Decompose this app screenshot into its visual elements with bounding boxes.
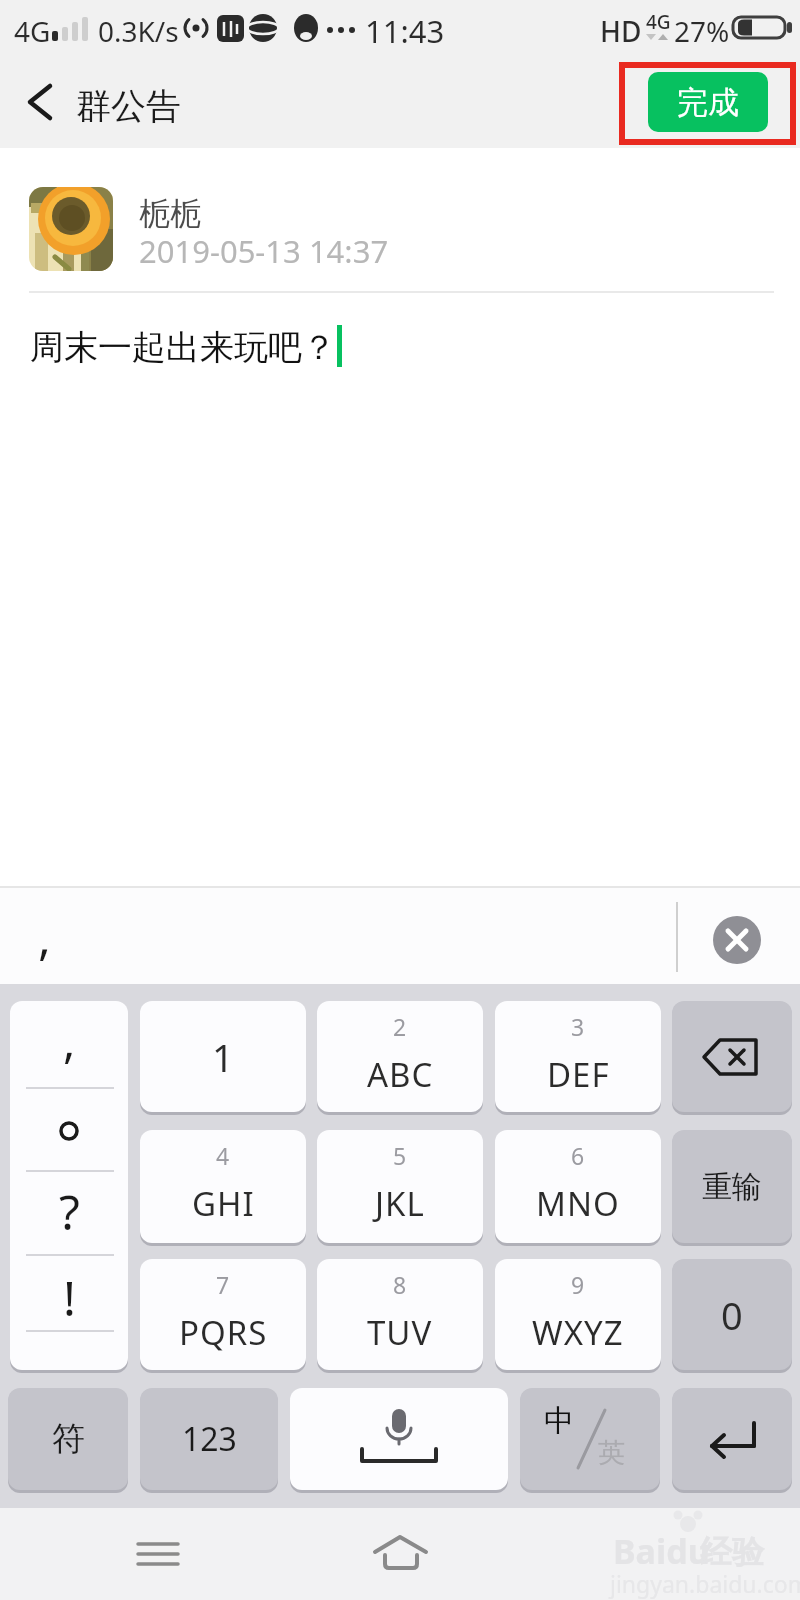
button[interactable]: 4 [140, 1130, 306, 1243]
button[interactable] [365, 1530, 435, 1580]
staticText: 5 [393, 1140, 407, 1171]
staticText: , [63, 1009, 76, 1072]
staticText: 4G [646, 9, 671, 35]
button[interactable]: 符 [8, 1388, 128, 1490]
staticText: jingyan.baidu.com [610, 1568, 800, 1599]
staticText: 栀栀 [139, 194, 201, 233]
button[interactable]: 5 [317, 1130, 483, 1243]
staticText: 4 [216, 1140, 230, 1171]
staticText: ? [59, 1179, 80, 1244]
staticText: 8 [393, 1269, 407, 1300]
staticText: 27% [674, 12, 730, 50]
button[interactable]: 中 [520, 1388, 660, 1490]
staticText: 123 [182, 1417, 237, 1461]
staticText: 符 [52, 1418, 85, 1460]
button[interactable]: , [10, 1001, 128, 1370]
staticText: Baidu [613, 1528, 710, 1574]
staticText: 0.3K/s [98, 12, 179, 50]
button[interactable] [118, 1525, 198, 1585]
staticText: 3 [571, 1011, 585, 1042]
staticText: 9 [571, 1269, 585, 1300]
staticText: 英 [598, 1436, 625, 1470]
staticText: 经验 [700, 1532, 764, 1572]
staticText: 中 [544, 1402, 574, 1440]
staticText: 群公告 [76, 84, 181, 128]
staticText: MNO [536, 1181, 620, 1226]
button[interactable]: 重输 [672, 1130, 792, 1243]
staticText: 重输 [702, 1168, 762, 1206]
staticText: WXYZ [532, 1310, 624, 1355]
staticText: 0 [721, 1289, 743, 1341]
button[interactable]: 8 [317, 1259, 483, 1370]
button[interactable] [14, 76, 66, 128]
button[interactable]: 1 [140, 1001, 306, 1112]
staticText: HD [600, 12, 642, 50]
button[interactable] [672, 1388, 792, 1490]
staticText: GHI [192, 1181, 255, 1226]
staticText: 4G [14, 12, 51, 50]
staticText: 完成 [677, 83, 739, 122]
button[interactable] [672, 1001, 792, 1112]
staticText: 6 [571, 1140, 585, 1171]
button[interactable]: 2 [317, 1001, 483, 1112]
button[interactable]: 123 [140, 1388, 278, 1490]
button[interactable]: 3 [495, 1001, 661, 1112]
staticText: 7 [216, 1269, 230, 1300]
staticText: TUV [367, 1310, 433, 1355]
button[interactable]: 9 [495, 1259, 661, 1370]
button[interactable] [290, 1388, 508, 1490]
staticText: , [38, 904, 51, 969]
staticText: PQRS [179, 1310, 268, 1355]
staticText: 2019-05-13 14:37 [139, 230, 389, 272]
button[interactable]: 7 [140, 1259, 306, 1370]
staticText: 周末一起出来玩吧？ [30, 326, 336, 369]
button[interactable]: 完成 [648, 72, 768, 132]
staticText: 1 [212, 1031, 234, 1083]
staticText: ! [63, 1265, 76, 1330]
staticText: 11:43 [365, 10, 445, 52]
button[interactable]: 0 [672, 1259, 792, 1370]
staticText: 2 [393, 1011, 407, 1042]
button[interactable]: 6 [495, 1130, 661, 1243]
staticText: DEF [547, 1052, 610, 1097]
staticText: JKL [375, 1181, 425, 1226]
staticText: ABC [367, 1052, 434, 1097]
button[interactable] [713, 916, 761, 964]
